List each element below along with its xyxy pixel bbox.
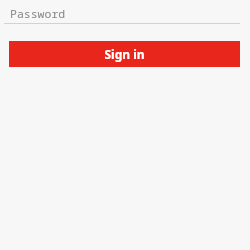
button[interactable]: Sign in <box>9 41 240 67</box>
button[interactable]: Password <box>0 6 250 24</box>
staticText: Password <box>10 6 66 22</box>
staticText: Sign in <box>104 46 145 62</box>
